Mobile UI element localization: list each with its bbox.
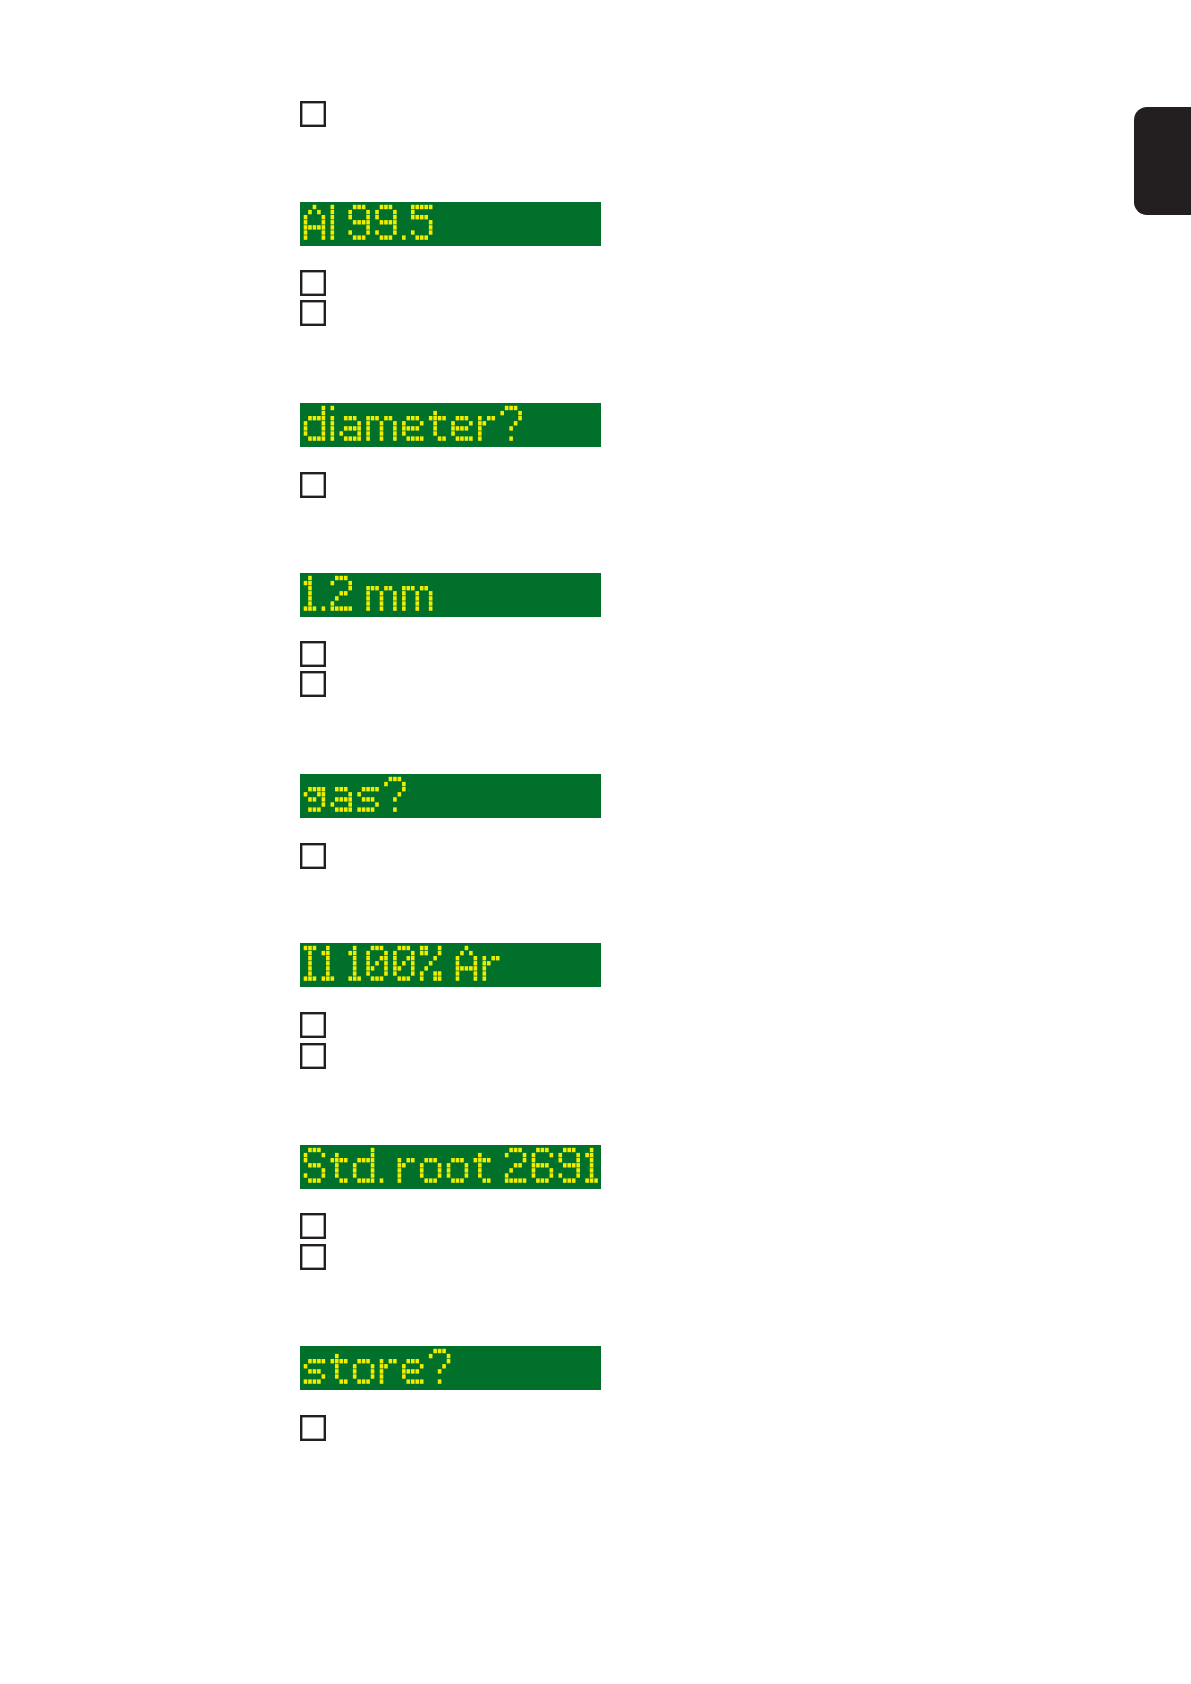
button[interactable]: I1 100% Ar [300, 943, 601, 987]
button[interactable]: Step 6 tick box [300, 671, 326, 697]
button[interactable]: Step 11 tick box [300, 1244, 326, 1270]
button[interactable]: Std. root 2691 [300, 1145, 601, 1189]
button[interactable]: Step 2 tick box [300, 270, 326, 296]
button[interactable]: Step 12 tick box [300, 1415, 326, 1441]
button[interactable]: Step 4 tick box [300, 472, 326, 498]
button[interactable]: Step 9 tick box [300, 1043, 326, 1069]
button[interactable]: gas? [300, 774, 601, 818]
button[interactable]: store? [300, 1346, 601, 1390]
button[interactable]: 1.2 mm [300, 573, 601, 617]
button[interactable]: Step 1 tick box [300, 101, 326, 127]
button[interactable]: Al 99.5 [300, 202, 601, 246]
button[interactable]: Step 5 tick box [300, 641, 326, 667]
button[interactable]: Step 8 tick box [300, 1012, 326, 1038]
button[interactable]: diameter? [300, 403, 601, 447]
button[interactable]: Chapter tab [1134, 107, 1191, 215]
button[interactable]: Step 3 tick box [300, 300, 326, 326]
button[interactable]: Step 10 tick box [300, 1213, 326, 1239]
button[interactable]: Step 7 tick box [300, 843, 326, 869]
